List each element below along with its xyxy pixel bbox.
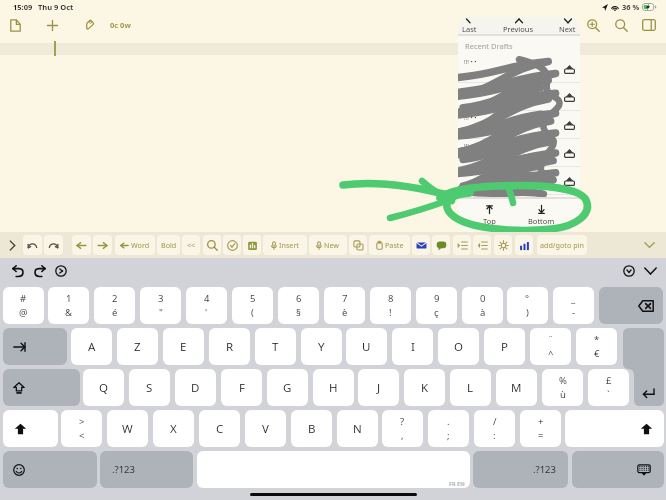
button[interactable]: 6 [278,287,319,324]
button[interactable]: Y [301,328,342,365]
button[interactable]: Caps lock [3,369,80,406]
button[interactable]: O [438,328,479,365]
button[interactable]: % [542,369,583,406]
button[interactable]: << [182,235,200,255]
button[interactable]: Backspace [599,287,663,324]
button[interactable]: 9 [416,287,457,324]
button[interactable]: !!! • • [458,167,580,195]
button[interactable]: / [474,410,515,447]
button[interactable]: C [199,410,240,447]
button[interactable]: Word [115,235,155,255]
button[interactable]: toolbar action [412,235,430,255]
button[interactable]: # [3,287,44,324]
button[interactable]: Dismiss keyboard [572,451,664,488]
button[interactable]: toolbar action [223,235,241,255]
button[interactable]: toolbar action [23,235,42,255]
button[interactable]: More [52,262,70,280]
button[interactable]: ° [507,287,548,324]
button[interactable]: W [107,410,148,447]
button[interactable]: 7 [324,287,365,324]
button[interactable]: 5 [232,287,273,324]
button[interactable]: Search [609,13,633,37]
button[interactable]: R [209,328,250,365]
button[interactable]: ¨ [530,328,571,365]
button[interactable]: Space [197,451,470,488]
button[interactable]: Tag [77,13,101,37]
button[interactable]: 0 [462,287,503,324]
button[interactable]: Last [460,18,479,34]
button[interactable]: toolbar action [473,235,491,255]
button[interactable]: Redo [30,262,48,280]
button[interactable]: A [71,328,112,365]
button[interactable]: > [61,410,102,447]
button[interactable]: ? [382,410,423,447]
button[interactable]: _ [553,287,594,324]
button[interactable]: toolbar action [93,235,112,255]
button[interactable]: D [175,369,216,406]
button[interactable]: X [153,410,194,447]
button[interactable]: toolbar action [515,235,533,255]
button[interactable]: 1 [48,287,89,324]
button[interactable]: toolbar action [453,235,471,255]
button[interactable]: .?123 [100,451,193,488]
button[interactable]: New [309,235,347,255]
button[interactable]: Paste [369,235,410,255]
button[interactable]: * [576,328,617,365]
button[interactable]: U [346,328,387,365]
button[interactable]: Emoji [3,451,97,488]
button[interactable]: Bottom [522,205,561,226]
button[interactable]: add/goto pin [537,235,587,255]
button[interactable]: + [520,410,561,447]
button[interactable]: B [291,410,332,447]
button[interactable]: Hide keyboard [641,262,659,280]
button[interactable]: Undo [9,262,27,280]
button[interactable]: Q [83,369,124,406]
button[interactable]: !!! • • [458,139,580,167]
button[interactable]: Tab [3,328,67,365]
button[interactable]: .?123 [473,451,568,488]
button[interactable]: S [129,369,170,406]
button[interactable]: Return [623,328,664,406]
button[interactable]: !!! • • [458,55,580,83]
button[interactable]: !!! • • [458,111,580,139]
button[interactable]: toolbar action [203,235,221,255]
button[interactable]: toolbar action [72,235,91,255]
button[interactable]: Shift [565,410,664,447]
button[interactable]: 4 [186,287,227,324]
button[interactable]: H [313,369,354,406]
button[interactable]: P [484,328,525,365]
button[interactable]: Suggestions [620,262,638,280]
button[interactable]: Z [117,328,158,365]
button[interactable]: K [404,369,445,406]
button[interactable]: 3 [140,287,181,324]
button[interactable]: I [392,328,433,365]
button[interactable]: Next [557,18,578,34]
button[interactable]: toolbar action [432,235,450,255]
button[interactable]: toolbar action [494,235,512,255]
button[interactable]: N [337,410,378,447]
button[interactable]: toolbar action [349,235,367,255]
button[interactable]: Collapse toolbar [640,236,658,254]
button[interactable]: G [267,369,308,406]
button[interactable]: Bold [157,235,180,255]
button[interactable]: Zoom in [581,13,605,37]
button[interactable]: Shift [3,410,58,447]
button[interactable]: V [245,410,286,447]
button[interactable]: Previous [501,18,536,34]
button[interactable]: F [221,369,262,406]
button[interactable]: Expand toolbar [4,236,20,254]
button[interactable]: !!! • • [458,83,580,111]
button[interactable]: 8 [370,287,411,324]
button[interactable]: E [163,328,204,365]
button[interactable]: Insert [263,235,307,255]
button[interactable]: Top [477,205,502,226]
button[interactable]: M [496,369,537,406]
button[interactable]: Split view [637,13,661,37]
button[interactable]: Add [40,13,64,37]
button[interactable]: T [255,328,296,365]
button[interactable]: 2 [94,287,135,324]
button[interactable]: J [358,369,399,406]
button[interactable]: L [450,369,491,406]
button[interactable]: New document [3,13,27,37]
button[interactable]: toolbar action [44,235,63,255]
